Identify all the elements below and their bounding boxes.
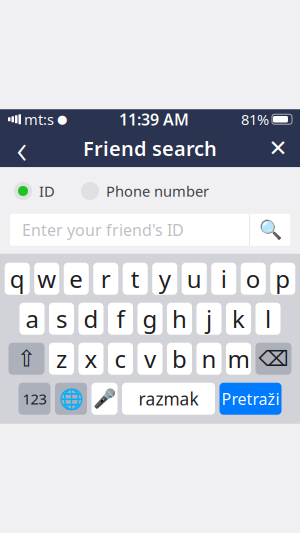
staticText: z (56, 343, 67, 375)
button[interactable]: t (123, 263, 148, 295)
button[interactable]: v (137, 343, 162, 375)
button[interactable]: ID (14, 181, 55, 201)
button[interactable]: o (241, 263, 266, 295)
staticText: j (206, 303, 212, 335)
staticText: razmak (138, 387, 198, 410)
staticText: Enter your friend's ID (22, 219, 184, 240)
button[interactable]: Dictation (91, 383, 117, 415)
staticText: o (246, 263, 261, 295)
button[interactable]: Phone number (81, 181, 209, 201)
button[interactable]: m (226, 343, 251, 375)
button[interactable]: y (152, 263, 177, 295)
staticText: Pretraži (221, 388, 279, 409)
staticText: l (265, 303, 271, 335)
staticText: 123 (22, 389, 46, 408)
staticText: i (221, 263, 227, 295)
staticText: s (56, 303, 67, 335)
button[interactable]: c (108, 343, 133, 375)
staticText: c (114, 343, 126, 375)
button[interactable]: q (5, 263, 30, 295)
button[interactable]: Pretraži (219, 383, 281, 415)
staticText: t (131, 263, 140, 295)
button[interactable]: x (78, 343, 103, 375)
staticText: x (84, 343, 97, 375)
button[interactable]: Switch keyboard (55, 383, 87, 415)
button[interactable]: d (78, 303, 103, 335)
staticText: e (69, 263, 83, 295)
button[interactable]: g (137, 303, 162, 335)
button[interactable]: n (196, 343, 221, 375)
button[interactable]: razmak (122, 383, 215, 415)
button[interactable]: Search (250, 214, 290, 246)
staticText: 🌐 (58, 387, 83, 410)
staticText: ⇧ (17, 346, 36, 372)
button[interactable]: i (211, 263, 236, 295)
staticText: ‹ (16, 122, 27, 175)
staticText: y (159, 263, 171, 295)
button[interactable]: Delete (255, 343, 291, 375)
staticText: d (83, 303, 98, 335)
button[interactable]: Close (256, 129, 300, 167)
staticText: Phone number (106, 181, 209, 201)
button[interactable]: a (19, 303, 44, 335)
button[interactable]: b (167, 343, 192, 375)
staticText: v (144, 343, 156, 375)
staticText: ✕ (268, 135, 287, 161)
button[interactable]: h (167, 303, 192, 335)
button[interactable]: j (196, 303, 221, 335)
button[interactable]: e (64, 263, 89, 295)
staticText: Friend search (83, 135, 217, 162)
button[interactable]: k (226, 303, 251, 335)
staticText: k (232, 303, 245, 335)
staticText: mt:s (24, 109, 54, 129)
staticText: n (201, 343, 216, 375)
staticText: m (227, 343, 249, 375)
staticText: ⌫ (258, 347, 288, 371)
staticText: 11:39 AM (119, 109, 189, 130)
button[interactable]: Shift (8, 343, 44, 375)
button[interactable]: f (108, 303, 133, 335)
button[interactable]: p (270, 263, 295, 295)
staticText: 🔍 (258, 219, 281, 240)
staticText: a (25, 303, 38, 335)
button[interactable]: s (49, 303, 74, 335)
staticText: p (275, 263, 290, 295)
button[interactable]: r (93, 263, 118, 295)
staticText: q (10, 263, 25, 295)
staticText: u (187, 263, 202, 295)
button[interactable]: l (255, 303, 280, 335)
staticText: g (142, 303, 157, 335)
staticText: ● (57, 112, 67, 126)
staticText: r (101, 263, 111, 295)
button[interactable]: z (49, 343, 74, 375)
button[interactable]: u (182, 263, 207, 295)
staticText: 🎤 (93, 388, 116, 409)
button[interactable]: Numbers (18, 383, 50, 415)
staticText: w (37, 263, 56, 295)
staticText: f (116, 303, 124, 335)
staticText: h (172, 303, 187, 335)
staticText: ID (39, 181, 55, 201)
button[interactable]: w (34, 263, 59, 295)
staticText: 81% (241, 109, 269, 129)
staticText: b (172, 343, 187, 375)
button[interactable]: Back (0, 129, 44, 167)
